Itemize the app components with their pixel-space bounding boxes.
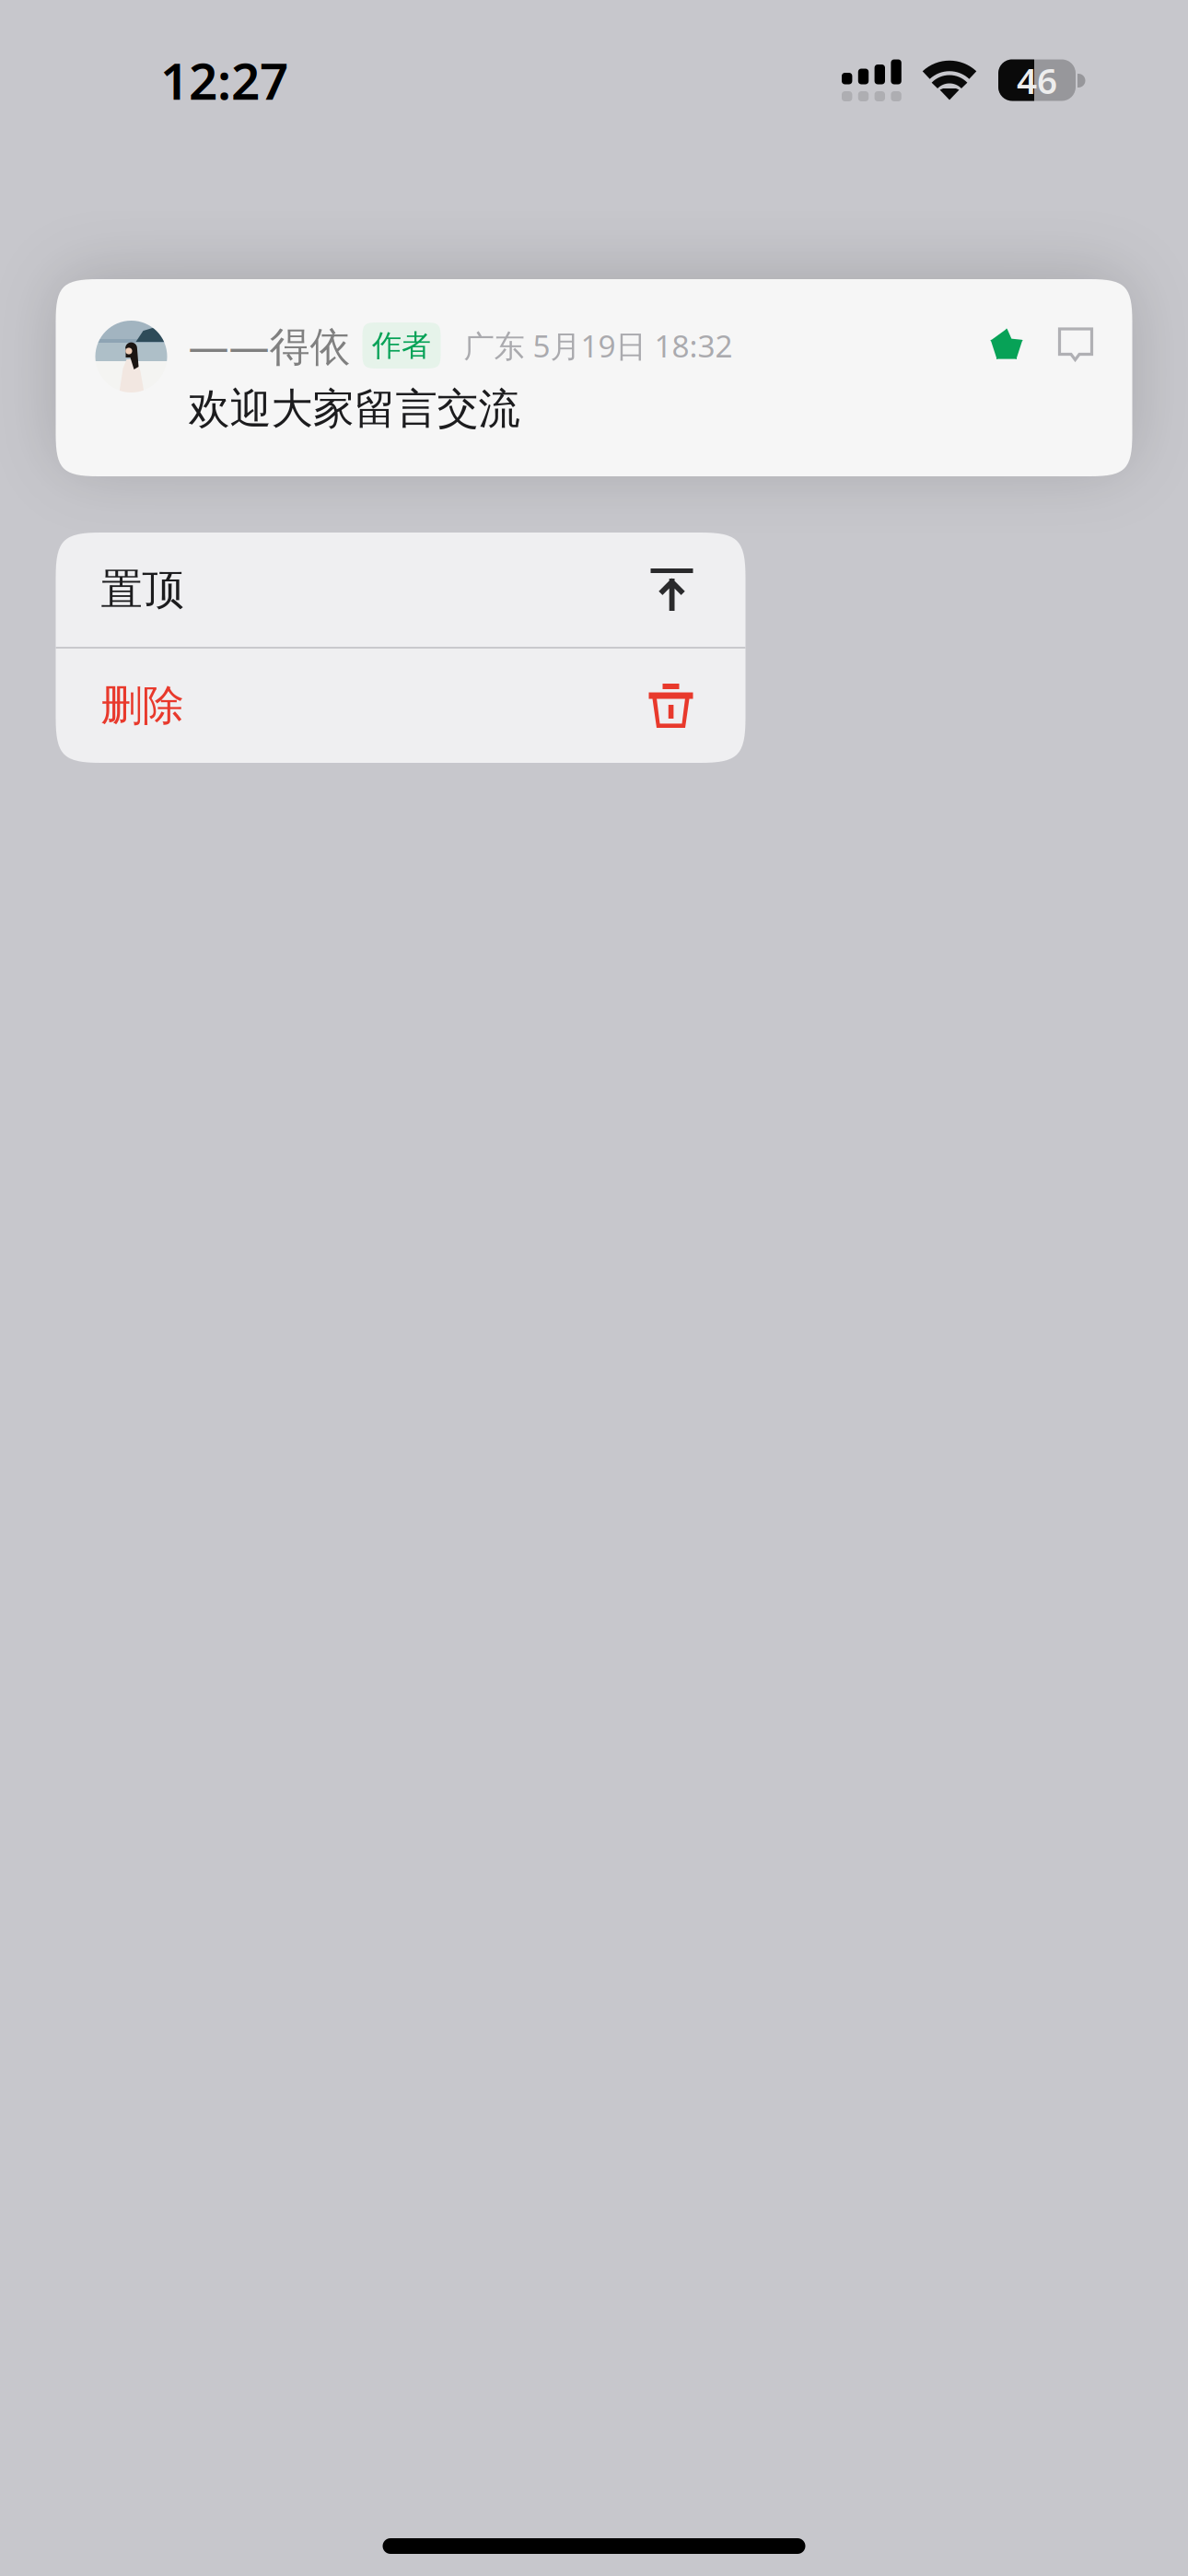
staticText: 46 [1017,56,1057,104]
staticText: 12:27 [160,47,288,114]
staticText: ——得依 [188,319,350,372]
staticText: 删除 [101,680,184,731]
staticText: 置顶 [101,564,184,615]
staticText: 欢迎大家留言交流 [188,383,520,435]
staticText: 广东 5月19日 18:32 [464,325,733,366]
button[interactable]: 置顶 [56,533,745,647]
button[interactable]: 删除 [56,649,745,763]
staticText: 作者 [372,327,431,364]
